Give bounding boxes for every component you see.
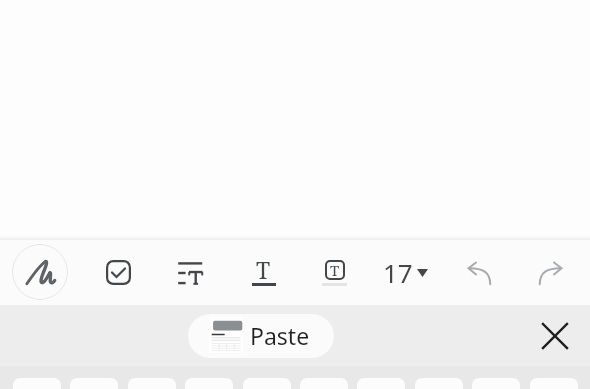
button[interactable]: Font size <box>377 240 433 305</box>
button[interactable]: Close <box>535 316 575 356</box>
button[interactable]: Key <box>70 378 118 389</box>
button[interactable]: Paste <box>188 314 334 358</box>
staticText: T <box>330 260 340 280</box>
button[interactable]: Redo <box>523 240 579 305</box>
button[interactable]: Key <box>128 378 176 389</box>
staticText: Paste <box>250 320 310 351</box>
button[interactable]: Key <box>472 378 520 389</box>
button[interactable]: Paragraph style <box>162 240 218 305</box>
button[interactable]: Text highlight <box>306 240 362 305</box>
button[interactable]: Key <box>357 378 405 389</box>
button[interactable]: Undo <box>450 240 506 305</box>
staticText: 17 <box>383 255 413 290</box>
button[interactable]: Checklist <box>90 240 146 305</box>
button[interactable]: Text format <box>235 240 291 305</box>
button[interactable]: Key <box>300 378 348 389</box>
button[interactable]: Handwriting <box>12 244 68 300</box>
button[interactable]: Key <box>185 378 233 389</box>
button[interactable]: Key <box>243 378 291 389</box>
staticText: T <box>256 254 271 280</box>
button[interactable]: Key <box>530 378 578 389</box>
button[interactable]: Key <box>13 378 61 389</box>
button[interactable]: Key <box>415 378 463 389</box>
